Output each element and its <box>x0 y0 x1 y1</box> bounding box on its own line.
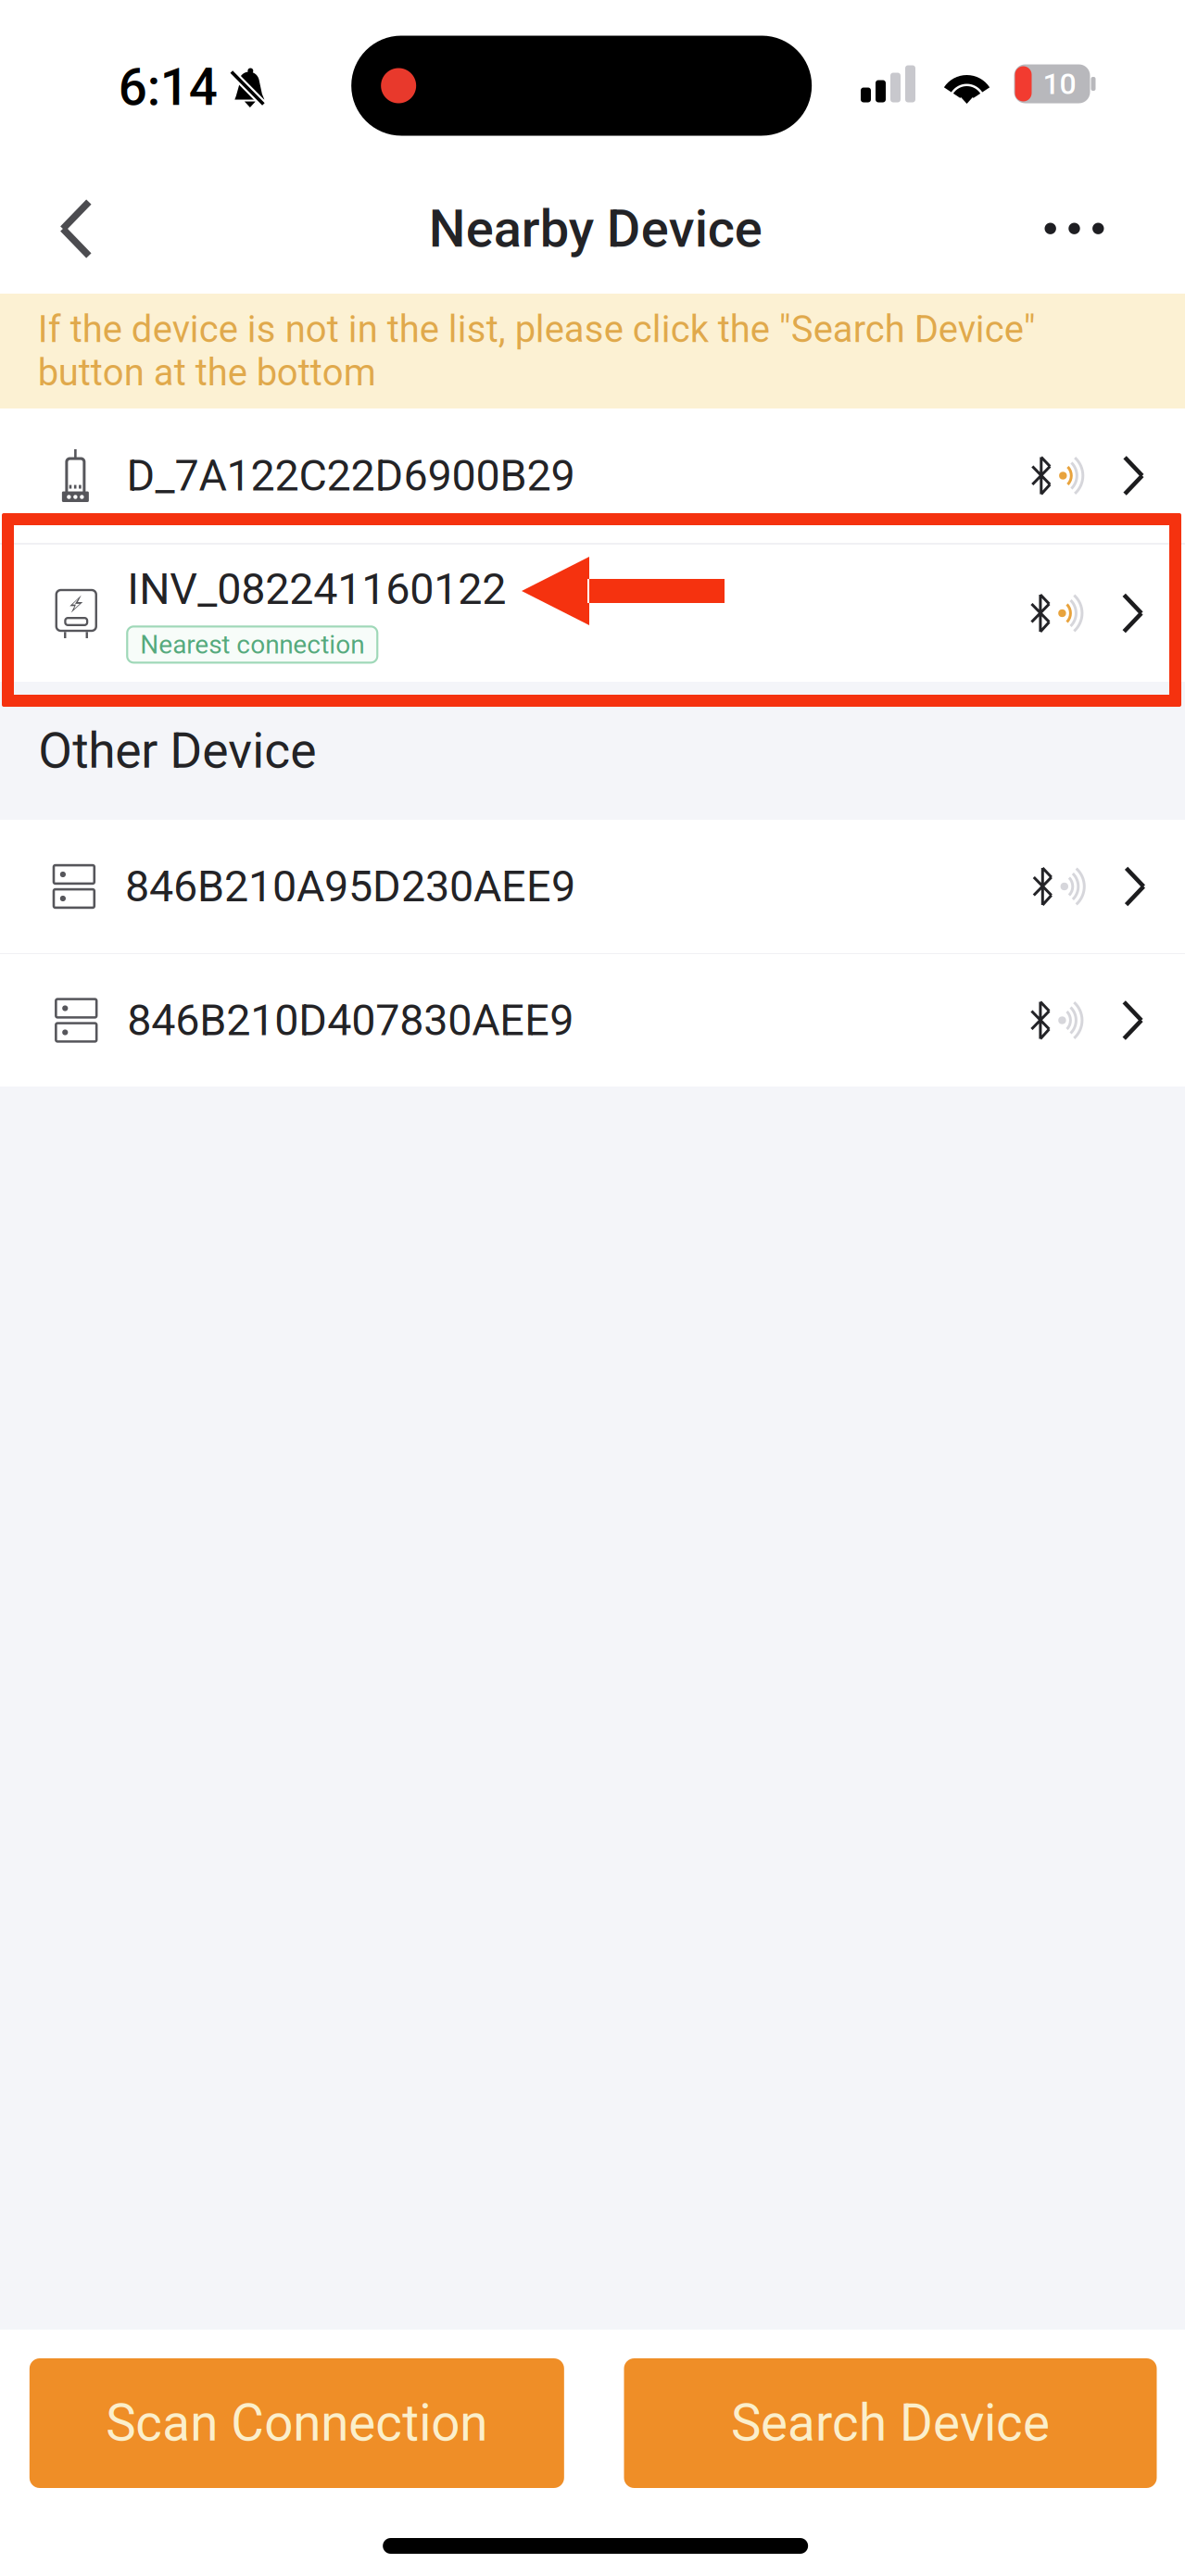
staticText: Nearby Device <box>429 198 762 259</box>
button[interactable]: Back <box>21 163 130 295</box>
button[interactable]: Scan Connection <box>29 2358 564 2488</box>
staticText: Other Device <box>38 722 316 780</box>
staticText: INV_082241160122 <box>127 564 506 614</box>
staticText: 6:14 <box>118 58 218 117</box>
staticText: D_7A122C22D6900B29 <box>126 450 575 501</box>
button[interactable]: 846B210D407830AEE9 <box>0 954 1185 1087</box>
button[interactable]: Search Device <box>624 2358 1157 2488</box>
button[interactable]: D_7A122C22D6900B29 <box>0 408 1185 543</box>
staticText: 846B210A95D230AEE9 <box>125 861 575 912</box>
button[interactable]: More options <box>1000 172 1147 286</box>
staticText: If the device is not in the list, please… <box>38 308 1036 395</box>
staticText: Search Device <box>731 2394 1050 2453</box>
staticText: Nearest connection <box>140 629 364 660</box>
staticText: Scan Connection <box>106 2394 488 2453</box>
staticText: 10 <box>1043 67 1076 101</box>
button[interactable]: 846B210A95D230AEE9 <box>0 820 1185 953</box>
staticText: 846B210D407830AEE9 <box>127 995 574 1046</box>
button[interactable]: INV_082241160122 <box>0 545 1185 682</box>
